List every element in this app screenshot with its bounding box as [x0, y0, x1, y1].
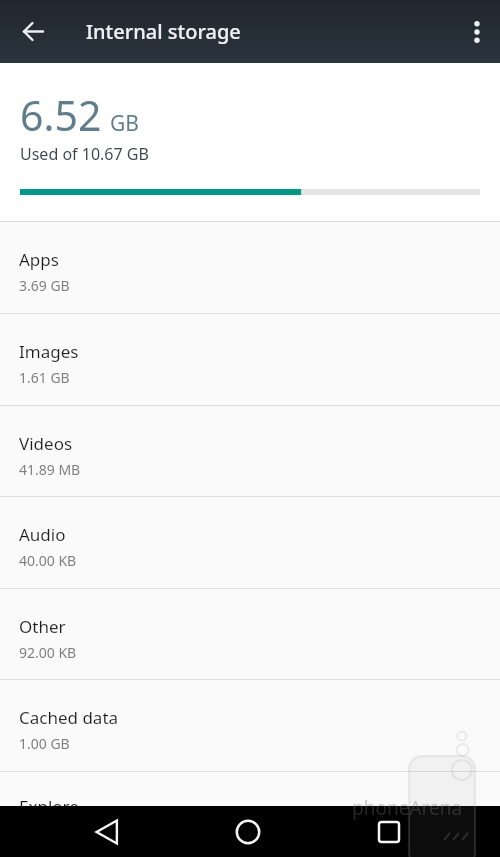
button[interactable]: Other — [0, 588, 500, 679]
button[interactable]: Audio — [0, 496, 500, 588]
staticText: 92.00 KB — [19, 643, 77, 662]
button[interactable] — [367, 815, 411, 848]
staticText: 40.00 KB — [19, 551, 77, 570]
button[interactable] — [8, 0, 58, 63]
button[interactable] — [226, 815, 270, 848]
staticText: Apps — [19, 248, 59, 271]
staticText: Explore — [19, 795, 79, 806]
staticText: Cached data — [19, 706, 119, 729]
button[interactable]: Cached data — [0, 679, 500, 771]
staticText: Audio — [19, 523, 66, 546]
staticText: phoneArena — [352, 795, 463, 821]
staticText: Videos — [19, 432, 73, 455]
staticText: 1.00 GB — [19, 734, 70, 753]
staticText: Used of 10.67 GB — [20, 143, 149, 165]
staticText: 6.52 — [20, 87, 102, 143]
staticText: Internal storage — [86, 18, 241, 45]
staticText: 3.69 GB — [19, 276, 70, 295]
button[interactable]: Apps — [0, 221, 500, 313]
staticText: 41.89 MB — [19, 460, 81, 479]
staticText: Images — [19, 340, 79, 363]
button[interactable]: Images — [0, 313, 500, 405]
staticText: Other — [19, 615, 66, 638]
staticText: GB — [110, 109, 139, 138]
button[interactable]: Videos — [0, 405, 500, 496]
staticText: 1.61 GB — [19, 368, 70, 387]
button[interactable] — [85, 815, 129, 848]
button[interactable] — [452, 0, 500, 63]
